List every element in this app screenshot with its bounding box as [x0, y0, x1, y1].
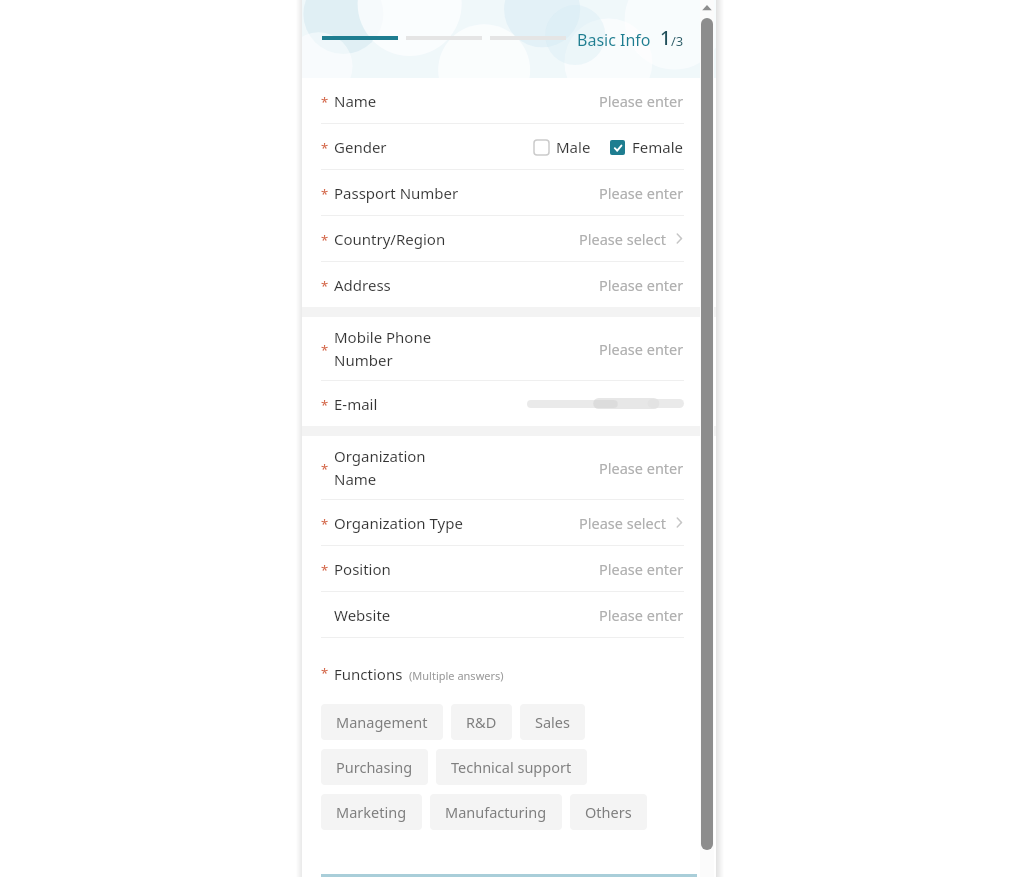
- button[interactable]: Manufacturing: [430, 794, 562, 830]
- staticText: Please enter: [599, 605, 684, 625]
- button[interactable]: Sales: [520, 704, 585, 740]
- button[interactable]: Female: [610, 137, 684, 157]
- button[interactable]: *: [302, 216, 716, 262]
- button[interactable]: Management: [321, 704, 443, 740]
- staticText: Website: [334, 605, 391, 625]
- staticText: Gender: [334, 137, 387, 157]
- staticText: Please enter: [599, 458, 684, 478]
- staticText: Technical support: [451, 757, 572, 777]
- staticText: *: [321, 341, 329, 359]
- staticText: Please select: [579, 513, 666, 533]
- staticText: Please enter: [599, 559, 684, 579]
- staticText: *: [321, 231, 329, 249]
- staticText: Male: [556, 137, 591, 157]
- button[interactable]: *: [302, 436, 716, 500]
- staticText: Passport Number: [334, 183, 459, 203]
- staticText: Name: [334, 91, 377, 111]
- staticText: *: [321, 139, 329, 157]
- staticText: Others: [585, 802, 632, 822]
- button[interactable]: Purchasing: [321, 749, 428, 785]
- staticText: 1: [660, 25, 671, 51]
- button[interactable]: *: [302, 500, 716, 546]
- staticText: *: [321, 396, 329, 414]
- button[interactable]: *: [302, 78, 716, 124]
- staticText: Mobile Phone: [334, 327, 432, 347]
- staticText: *: [321, 561, 329, 579]
- staticText: Please select: [579, 229, 666, 249]
- staticText: Please enter: [599, 339, 684, 359]
- staticText: Basic Info: [577, 29, 651, 51]
- staticText: Address: [334, 275, 391, 295]
- staticText: Country/Region: [334, 229, 446, 249]
- staticText: *: [321, 664, 329, 682]
- staticText: E-mail: [334, 394, 378, 414]
- staticText: *: [321, 277, 329, 295]
- staticText: Sales: [535, 712, 570, 732]
- button[interactable]: R&D: [451, 704, 512, 740]
- button[interactable]: Technical support: [436, 749, 587, 785]
- staticText: Position: [334, 559, 391, 579]
- staticText: Please enter: [599, 91, 684, 111]
- staticText: Please enter: [599, 275, 684, 295]
- staticText: /3: [671, 32, 684, 50]
- staticText: R&D: [466, 712, 497, 732]
- staticText: Functions: [334, 664, 403, 684]
- button[interactable]: *: [302, 381, 716, 426]
- staticText: Manufacturing: [445, 802, 547, 822]
- staticText: Number: [334, 350, 393, 370]
- button[interactable]: *: [302, 262, 716, 307]
- staticText: *: [321, 515, 329, 533]
- staticText: *: [321, 93, 329, 111]
- staticText: Purchasing: [336, 757, 413, 777]
- staticText: Management: [336, 712, 428, 732]
- button[interactable]: *: [302, 546, 716, 592]
- button[interactable]: Others: [570, 794, 647, 830]
- staticText: Organization: [334, 446, 426, 466]
- staticText: Name: [334, 469, 377, 489]
- button[interactable]: Marketing: [321, 794, 422, 830]
- button[interactable]: Male: [534, 137, 591, 157]
- button[interactable]: *: [302, 317, 716, 381]
- staticText: *: [321, 460, 329, 478]
- button[interactable]: *: [302, 170, 716, 216]
- staticText: Organization Type: [334, 513, 463, 533]
- button[interactable]: [321, 871, 697, 877]
- staticText: Please enter: [599, 183, 684, 203]
- staticText: *: [321, 185, 329, 203]
- button[interactable]: Scroll up: [700, 0, 714, 16]
- staticText: Marketing: [336, 802, 407, 822]
- staticText: (Multiple answers): [409, 668, 504, 683]
- button[interactable]: Website: [302, 592, 716, 638]
- staticText: Female: [632, 137, 684, 157]
